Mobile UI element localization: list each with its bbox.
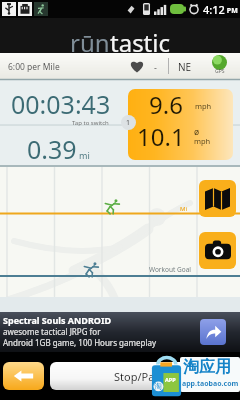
button[interactable]: Camera — [199, 232, 236, 269]
staticText: 9.6 — [149, 89, 183, 121]
button[interactable]: Map — [199, 180, 236, 217]
staticText: 淘应用 — [183, 357, 231, 377]
staticText: PM — [225, 6, 238, 16]
staticText: ø — [194, 126, 200, 138]
staticText: mph — [195, 101, 212, 111]
button[interactable]: 9.6 — [128, 89, 233, 160]
staticText: APP — [165, 376, 176, 383]
staticText: Workout Goal — [149, 265, 191, 274]
staticText: 4:12 — [203, 2, 225, 17]
staticText: 6:00 per Mile — [8, 61, 60, 73]
button[interactable]: 1 — [121, 115, 136, 130]
staticText: tastic — [110, 26, 170, 59]
staticText: GPS — [215, 68, 225, 75]
staticText: rūn — [70, 26, 110, 59]
staticText: Android 1GB game, 100 Hours gameplay — [3, 337, 157, 348]
staticText: 淘 — [154, 381, 162, 391]
staticText: Mi — [180, 205, 187, 213]
staticText: 1 — [126, 118, 131, 128]
staticText: NE — [178, 60, 192, 74]
button[interactable]: GPS — [208, 55, 231, 77]
button[interactable]: Back — [3, 362, 44, 390]
staticText: - — [154, 61, 157, 73]
staticText: Spectral Souls ANDROID — [3, 314, 112, 326]
staticText: Stop/Pause — [114, 369, 173, 384]
staticText: Tap to switch — [72, 119, 109, 127]
staticText: 10.1 — [137, 120, 185, 153]
staticText: app.taobao.com — [182, 379, 239, 389]
staticText: mi — [79, 149, 90, 161]
button[interactable] — [129, 58, 145, 74]
staticText: 0.39 — [27, 132, 77, 166]
button[interactable]: Stop/Pause — [50, 362, 237, 390]
button[interactable]: Open ad — [200, 319, 226, 345]
staticText: 00:03:43 — [11, 87, 111, 121]
staticText: mph — [194, 136, 211, 146]
button[interactable]: Spectral Souls ANDROID — [0, 312, 240, 352]
staticText: awesome tactical JRPG for — [3, 326, 101, 337]
